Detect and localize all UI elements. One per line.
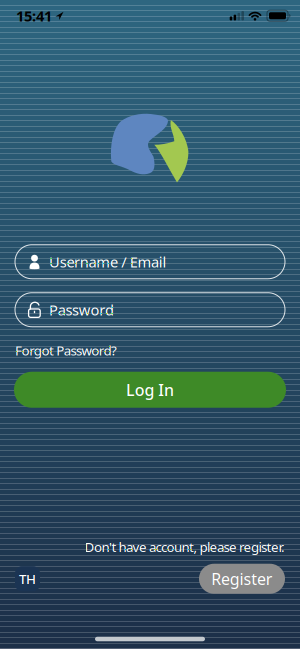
button[interactable]: Username / Email [15, 245, 285, 279]
staticText: Username / Email [49, 252, 166, 271]
button[interactable]: Forgot Password? [15, 341, 117, 359]
staticText: Log In [126, 379, 174, 400]
button[interactable]: Log In [14, 372, 286, 408]
staticText: Password [49, 300, 114, 319]
button[interactable]: Language [15, 566, 40, 591]
staticText: TH [19, 570, 36, 588]
button[interactable]: Password [15, 293, 285, 327]
staticText: 15:41 [16, 6, 52, 25]
button[interactable]: Register [199, 564, 285, 594]
staticText: Register [211, 568, 273, 589]
staticText: Forgot Password? [15, 341, 117, 359]
staticText: Don't have account, please register. [84, 538, 285, 556]
